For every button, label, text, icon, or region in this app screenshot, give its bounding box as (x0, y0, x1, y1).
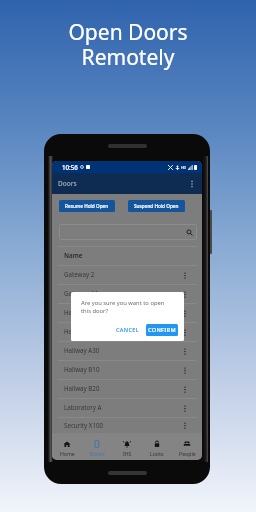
button[interactable]: Row menu (179, 418, 191, 433)
button[interactable]: Hallway B20 (58, 380, 197, 398)
staticText: Name (64, 251, 83, 259)
staticText: Hallway B20 (64, 384, 100, 392)
button[interactable]: Gateway 2 (58, 266, 197, 284)
button[interactable]: Name (58, 247, 197, 265)
staticText: 10:56 (62, 163, 78, 171)
staticText: Home (60, 450, 75, 457)
button[interactable]: Row menu (179, 306, 191, 321)
button[interactable]: Hallway B10 (58, 361, 197, 379)
button[interactable]: Search (59, 224, 197, 240)
button[interactable]: IHS (112, 433, 142, 460)
button[interactable]: Row menu (179, 268, 191, 283)
staticText: Locks (150, 450, 164, 457)
button[interactable]: Row menu (179, 287, 191, 302)
button[interactable]: CONFIRM (146, 324, 178, 336)
button[interactable]: Security X100 (58, 418, 197, 433)
button[interactable]: Row menu (179, 363, 191, 378)
button[interactable]: Hallway A10 (58, 304, 197, 322)
button[interactable]: Resume Hold Open (59, 200, 115, 212)
button[interactable]: Home (52, 433, 82, 460)
button[interactable]: People (172, 433, 202, 460)
staticText: Open Doors Remotely (0, 18, 256, 71)
staticText: Hallway A10 (64, 308, 100, 316)
button[interactable]: Hallway A30 (58, 342, 197, 360)
button[interactable]: Row menu (179, 344, 191, 359)
staticText: Hallway B10 (64, 365, 100, 373)
staticText: Laboratory A (64, 403, 102, 411)
other: Search (186, 229, 193, 236)
staticText: HD (181, 165, 187, 170)
staticText: CANCEL (116, 326, 140, 334)
staticText: Suspend Hold Open (134, 203, 179, 209)
staticText: Hallway A30 (64, 346, 100, 354)
button[interactable]: More options (186, 178, 198, 190)
staticText: Doors (90, 450, 105, 457)
button[interactable]: Locks (142, 433, 172, 460)
staticText: Doors (58, 179, 77, 188)
staticText: Hallway A20 (64, 327, 100, 335)
staticText: Gateway 2 (64, 270, 95, 278)
staticText: People (179, 450, 196, 457)
button[interactable]: Row menu (179, 382, 191, 397)
button[interactable]: Gateway A1 (58, 285, 197, 303)
button[interactable]: Doors (82, 433, 112, 460)
staticText: Security X100 (64, 421, 104, 429)
button[interactable]: Row menu (179, 325, 191, 340)
button[interactable]: Suspend Hold Open (128, 200, 185, 212)
button[interactable]: Row menu (179, 401, 191, 416)
staticText: IHS (123, 450, 132, 457)
button[interactable]: CANCEL (114, 324, 142, 336)
button[interactable]: Laboratory A (58, 399, 197, 417)
staticText: Resume Hold Open (65, 203, 109, 209)
button[interactable]: Hallway A20 (58, 323, 197, 341)
staticText: Gateway A1 (64, 289, 99, 297)
staticText: Are you sure you want to open this door? (81, 299, 173, 315)
staticText: CONFIRM (148, 326, 176, 334)
